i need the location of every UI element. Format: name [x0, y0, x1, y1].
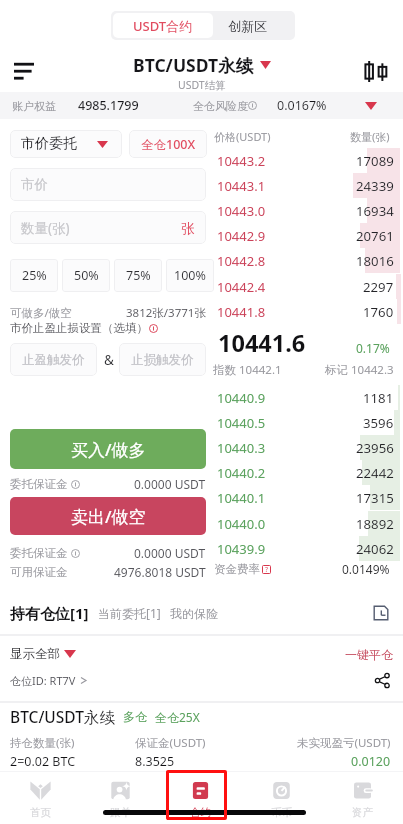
- staticText: 25%: [22, 267, 47, 284]
- staticText: 24062: [356, 540, 394, 558]
- staticText: 全仓风险度: [193, 99, 248, 113]
- staticText: 币币: [271, 806, 292, 819]
- staticText: 持仓数量(张): [10, 735, 75, 751]
- staticText: 显示全部: [10, 646, 60, 662]
- button[interactable]: 创新区: [213, 13, 293, 38]
- button[interactable]: 10443.1: [208, 173, 403, 198]
- staticText: 10442.8: [217, 252, 266, 270]
- staticText: 全仓100X: [141, 136, 196, 153]
- staticText: 50%: [74, 267, 99, 284]
- button[interactable]: 币币: [241, 771, 322, 824]
- button[interactable]: 10441.8: [208, 299, 403, 324]
- button[interactable]: 首页: [0, 771, 80, 824]
- button[interactable]: Chart: [355, 51, 396, 91]
- staticText: 全仓25X: [155, 709, 200, 725]
- button[interactable]: 市价委托: [10, 130, 122, 158]
- button[interactable]: 合约: [160, 771, 241, 824]
- staticText: 10442.4: [217, 278, 266, 296]
- button[interactable]: 仓位ID: RT7V: [10, 673, 87, 688]
- button[interactable]: 10440.1: [208, 485, 403, 510]
- staticText: 我的保险: [170, 606, 218, 621]
- button[interactable]: Expand: [358, 92, 384, 119]
- staticText: 10440.5: [217, 414, 266, 432]
- staticText: 23956: [356, 439, 394, 457]
- button[interactable]: 50%: [62, 259, 110, 292]
- staticText: 3596: [363, 414, 394, 432]
- button[interactable]: 10440.2: [208, 460, 403, 485]
- button[interactable]: 卖出/做空: [10, 497, 206, 535]
- button[interactable]: 25%: [10, 259, 58, 292]
- staticText: 75%: [126, 267, 151, 284]
- staticText: BTC/USDT永续: [133, 53, 254, 77]
- button[interactable]: 10442.9: [208, 223, 403, 248]
- staticText: 17089: [356, 152, 394, 170]
- staticText: 10441.6: [218, 327, 306, 359]
- staticText: 未实现盈亏(USDT): [297, 735, 391, 751]
- staticText: 止损触发价: [131, 352, 194, 368]
- button[interactable]: 10440.3: [208, 435, 403, 460]
- staticText: 委托保证金: [10, 477, 68, 491]
- button[interactable]: Menu: [4, 51, 44, 91]
- staticText: 委托保证金: [10, 546, 68, 560]
- button[interactable]: Order history: [369, 601, 393, 625]
- button[interactable]: 10440.5: [208, 410, 403, 435]
- staticText: 跟单: [110, 806, 131, 819]
- staticText: 8.3525: [135, 753, 175, 770]
- staticText: 标记 10442.3: [325, 362, 394, 378]
- staticText: 0.0000 USDT: [134, 476, 206, 492]
- button[interactable]: 止损触发价: [119, 343, 206, 376]
- button[interactable]: USDT合约: [113, 13, 213, 38]
- button[interactable]: 我的保险: [170, 606, 218, 621]
- staticText: 市价止盈止损设置（选填）: [10, 321, 148, 335]
- button[interactable]: 10440.0: [208, 511, 403, 536]
- staticText: 0.17%: [356, 340, 390, 356]
- button[interactable]: BTC/USDT永续: [133, 53, 254, 77]
- staticText: 4985.1799: [78, 97, 139, 114]
- button[interactable]: 10443.0: [208, 198, 403, 223]
- staticText: 22442: [356, 464, 394, 482]
- staticText: 10440.1: [217, 489, 266, 507]
- staticText: 买入/做多: [71, 438, 146, 461]
- button[interactable]: 持有仓位[1]: [10, 603, 89, 623]
- staticText: 市价委托: [21, 135, 77, 153]
- staticText: 张: [181, 220, 195, 237]
- staticText: 10443.2: [217, 152, 266, 170]
- button[interactable]: 75%: [114, 259, 162, 292]
- staticText: 数量(张): [21, 219, 70, 237]
- staticText: 10440.0: [217, 515, 266, 533]
- staticText: 首页: [30, 806, 51, 819]
- staticText: 4976.8018 USDT: [114, 564, 206, 580]
- staticText: USDT合约: [133, 17, 193, 35]
- button[interactable]: Share: [371, 669, 393, 691]
- button[interactable]: 一键平仓: [345, 647, 393, 662]
- button[interactable]: 资产: [322, 771, 403, 824]
- button[interactable]: 买入/做多: [10, 429, 206, 469]
- button[interactable]: 10440.9: [208, 385, 403, 410]
- staticText: 10442.9: [217, 227, 266, 245]
- button[interactable]: 10439.9: [208, 536, 403, 561]
- staticText: 市价: [21, 176, 48, 193]
- button[interactable]: 跟单: [80, 771, 160, 824]
- button[interactable]: 10442.4: [208, 274, 403, 299]
- button[interactable]: 当前委托[1]: [98, 605, 161, 621]
- staticText: 资产: [352, 806, 373, 819]
- button[interactable]: 显示全部: [10, 646, 76, 662]
- staticText: 合约: [190, 806, 211, 819]
- staticText: &: [104, 351, 114, 369]
- staticText: 3812张/3771张: [126, 305, 206, 321]
- staticText: 10443.1: [217, 177, 266, 195]
- button[interactable]: 10443.2: [208, 148, 403, 173]
- staticText: 18016: [356, 252, 394, 270]
- staticText: 0.0000 USDT: [134, 545, 206, 561]
- button[interactable]: 全仓100X: [129, 130, 207, 158]
- button[interactable]: 10442.8: [208, 248, 403, 273]
- staticText: 1181: [363, 389, 394, 407]
- staticText: 0.0120: [351, 753, 391, 770]
- button[interactable]: 数量(张): [10, 211, 206, 244]
- staticText: 指数 10442.1: [213, 362, 282, 378]
- staticText: 当前委托[1]: [98, 605, 161, 621]
- staticText: 10439.9: [217, 540, 266, 558]
- button[interactable]: 100%: [166, 259, 214, 292]
- button[interactable]: 市价: [10, 168, 206, 201]
- button[interactable]: 止盈触发价: [10, 343, 97, 376]
